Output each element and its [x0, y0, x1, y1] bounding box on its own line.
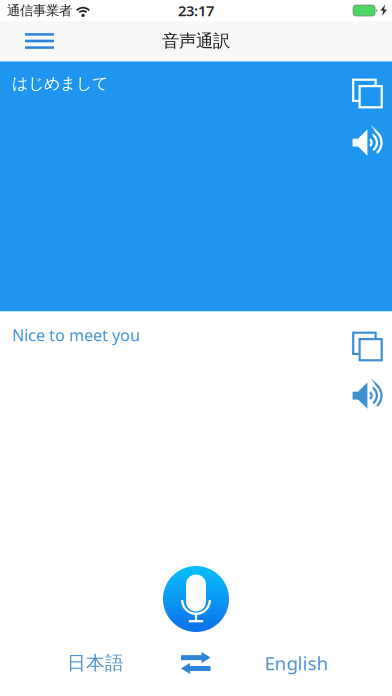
button[interactable]: Copy	[345, 325, 390, 367]
button[interactable]: English	[231, 644, 362, 682]
button[interactable]: Menu	[0, 21, 68, 61]
button[interactable]: Swap languages	[161, 644, 231, 682]
button[interactable]: Record	[163, 566, 229, 632]
staticText: Nice to meet you	[12, 324, 140, 346]
button[interactable]: Speak	[346, 114, 389, 162]
staticText: はじめまして	[12, 73, 108, 93]
staticText: 23:17	[178, 1, 214, 20]
button[interactable]: Speak	[346, 367, 389, 415]
staticText: 音声通訳	[162, 30, 230, 52]
staticText: 日本語	[67, 651, 124, 674]
button[interactable]: 日本語	[30, 644, 161, 682]
staticText: English	[264, 651, 328, 675]
staticText: 通信事業者	[7, 2, 72, 19]
button[interactable]: Copy	[345, 72, 390, 114]
